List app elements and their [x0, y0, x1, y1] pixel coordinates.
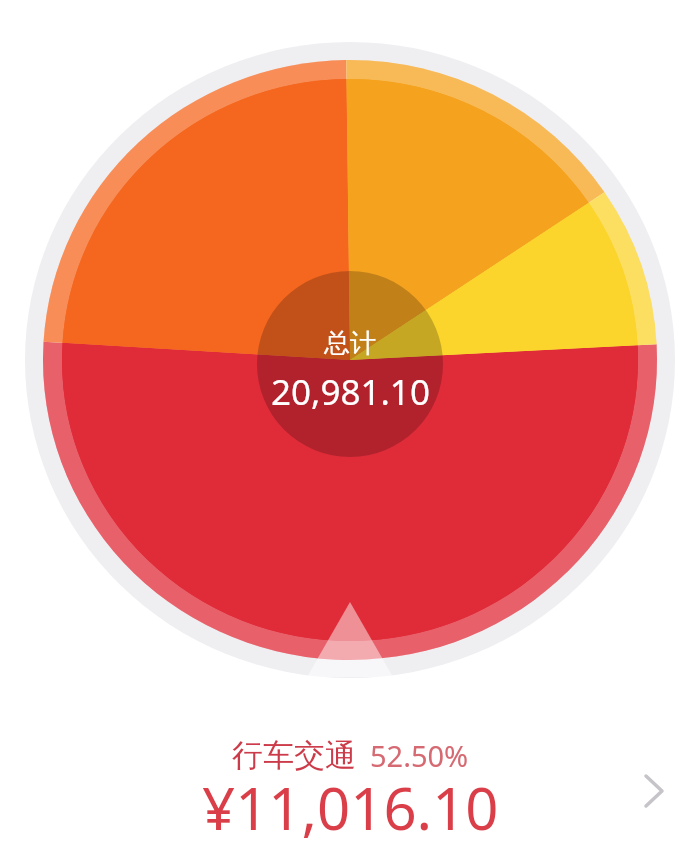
staticText: 总计 — [324, 327, 376, 360]
staticText: 20,981.10 — [271, 368, 430, 416]
button[interactable] — [17, 35, 683, 685]
staticText: 行车交通 — [232, 736, 356, 775]
staticText: 52.50% — [370, 736, 469, 775]
button[interactable]: 行车交通 — [0, 735, 700, 847]
staticText: ¥11,016.10 — [202, 768, 499, 844]
